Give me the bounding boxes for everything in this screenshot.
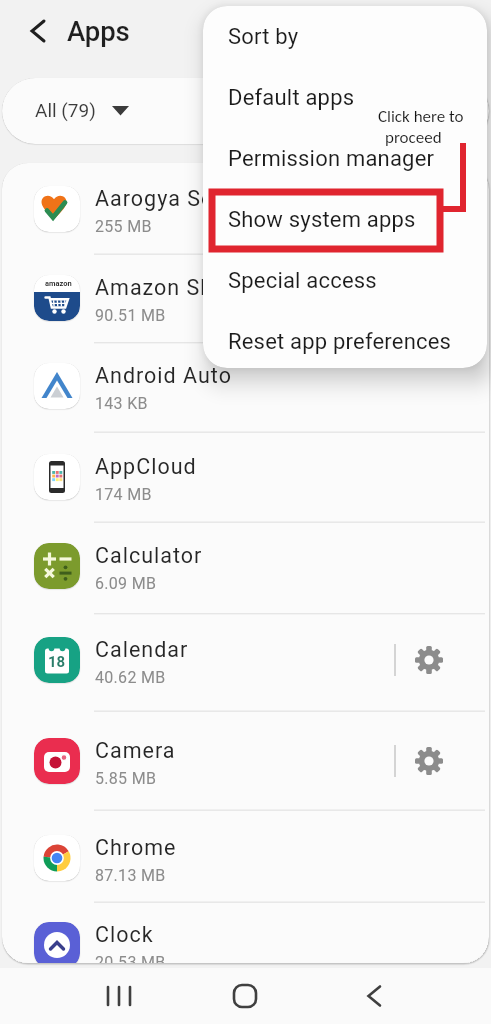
staticText: 18: [48, 653, 66, 671]
staticText: Show system apps: [228, 207, 416, 233]
button[interactable]: Calculator: [2, 521, 489, 611]
staticText: Click here to: [378, 106, 464, 127]
button[interactable]: Special access: [203, 250, 487, 311]
button[interactable]: amazon: [2, 253, 489, 343]
staticText: Reset app preferences: [228, 329, 452, 355]
staticText: Sort by: [228, 24, 299, 50]
staticText: Chrome: [95, 835, 177, 860]
button[interactable]: All (79): [2, 78, 489, 144]
button[interactable]: Android Auto: [2, 341, 489, 431]
staticText: Amazon Shopping: [95, 275, 285, 300]
staticText: Permission manager: [228, 146, 435, 172]
staticText: Android Auto: [95, 363, 232, 388]
button[interactable]: Default apps: [203, 67, 487, 128]
staticText: 255 MB: [95, 217, 152, 236]
button[interactable]: [20, 18, 48, 46]
staticText: Clock: [95, 922, 154, 947]
staticText: 20.53 MB: [95, 953, 166, 963]
button[interactable]: Aarogya Setu: [2, 164, 489, 254]
button[interactable]: [103, 980, 135, 1012]
button[interactable]: [413, 745, 445, 777]
staticText: 87.13 MB: [95, 866, 166, 885]
staticText: Special access: [228, 268, 377, 294]
staticText: 40.62 MB: [95, 668, 166, 687]
button[interactable]: Show system apps: [203, 189, 487, 250]
button[interactable]: Permission manager: [203, 128, 487, 189]
staticText: Calculator: [95, 543, 203, 568]
button[interactable]: Camera: [2, 716, 489, 806]
button[interactable]: Clock: [2, 900, 489, 963]
staticText: AppCloud: [95, 454, 197, 479]
staticText: 143 KB: [95, 394, 148, 413]
button[interactable]: [358, 980, 390, 1012]
staticText: 174 MB: [95, 485, 152, 504]
staticText: All (79): [35, 99, 96, 121]
staticText: Default apps: [228, 85, 355, 111]
button[interactable]: Chrome: [2, 813, 489, 903]
button[interactable]: Sort by: [203, 6, 487, 67]
staticText: Calendar: [95, 637, 189, 662]
button[interactable]: AppCloud: [2, 432, 489, 522]
staticText: amazon: [45, 279, 72, 288]
staticText: 6.09 MB: [95, 574, 157, 593]
staticText: 90.51 MB: [95, 306, 166, 325]
staticText: proceed: [385, 127, 442, 148]
button[interactable]: 18: [2, 615, 489, 705]
staticText: 5.85 MB: [95, 769, 157, 788]
button[interactable]: Reset app preferences: [203, 311, 487, 368]
staticText: Aarogya Setu: [95, 186, 235, 211]
staticText: Camera: [95, 738, 176, 763]
button[interactable]: [413, 644, 445, 676]
staticText: Apps: [67, 15, 130, 47]
button[interactable]: [229, 980, 261, 1012]
